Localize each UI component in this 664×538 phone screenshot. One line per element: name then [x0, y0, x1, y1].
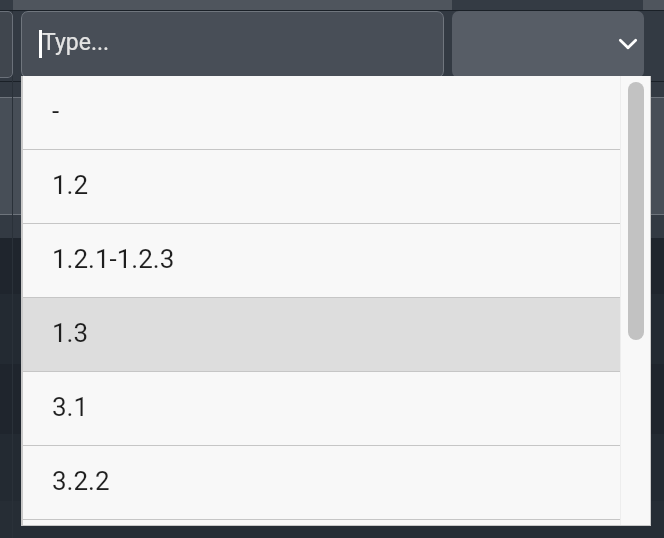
button[interactable]: 1.2: [23, 150, 650, 223]
staticText: -: [52, 96, 60, 126]
button[interactable]: Open dropdown: [452, 11, 644, 78]
staticText: 1.3: [52, 318, 89, 348]
button[interactable]: 1.3: [23, 298, 650, 371]
staticText: 3.2.2: [52, 466, 110, 496]
button[interactable]: 3.1: [23, 372, 650, 445]
staticText: 1.2.1-1.2.3: [52, 244, 175, 274]
staticText: 1.2: [52, 170, 89, 200]
staticText: Type...: [42, 29, 110, 56]
staticText: 3.1: [52, 392, 89, 422]
button[interactable]: -: [23, 76, 650, 149]
staticText: 3.3: [52, 518, 89, 523]
button[interactable]: 3.2.2: [23, 446, 650, 519]
button[interactable]: 1.2.1-1.2.3: [23, 224, 650, 297]
button[interactable]: Type...: [21, 11, 444, 78]
